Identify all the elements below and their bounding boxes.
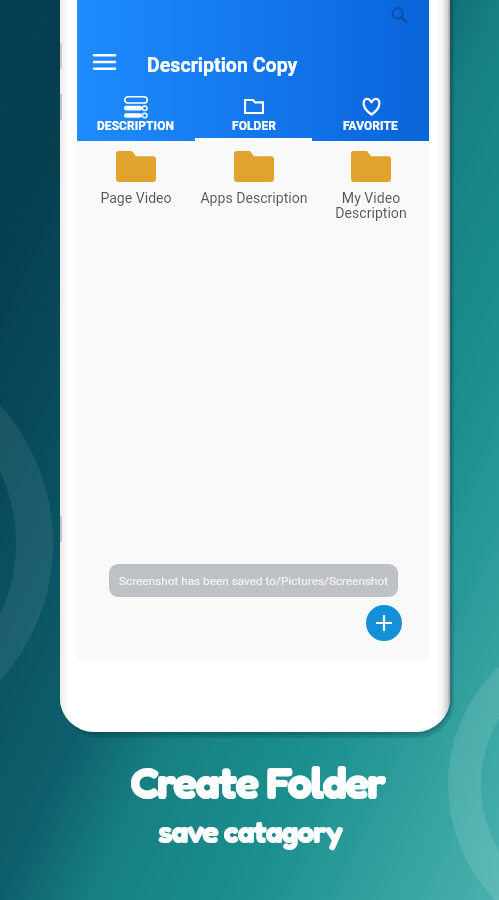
button[interactable]: FOLDER bbox=[195, 89, 312, 141]
button[interactable]: Add folder bbox=[366, 605, 402, 641]
staticText: save catagory bbox=[158, 813, 342, 851]
staticText: Page Video bbox=[100, 190, 172, 207]
button[interactable]: Apps Description bbox=[195, 151, 312, 207]
button[interactable]: Menu bbox=[84, 42, 124, 82]
button[interactable]: Search bbox=[387, 3, 411, 27]
staticText: Screenshot has been saved to/Pictures/Sc… bbox=[119, 574, 389, 588]
staticText: Create Folder bbox=[130, 755, 385, 809]
staticText: My Video Description bbox=[335, 190, 407, 222]
staticText: Apps Description bbox=[200, 190, 308, 207]
staticText: FOLDER bbox=[232, 119, 276, 133]
button[interactable]: DESCRIPTION bbox=[77, 89, 195, 141]
staticText: DESCRIPTION bbox=[97, 119, 175, 133]
button[interactable]: My Video Description bbox=[312, 151, 429, 222]
button[interactable]: FAVORITE bbox=[312, 89, 429, 141]
button[interactable]: Page Video bbox=[77, 151, 195, 207]
staticText: Description Copy bbox=[147, 54, 298, 77]
staticText: FAVORITE bbox=[343, 119, 398, 133]
